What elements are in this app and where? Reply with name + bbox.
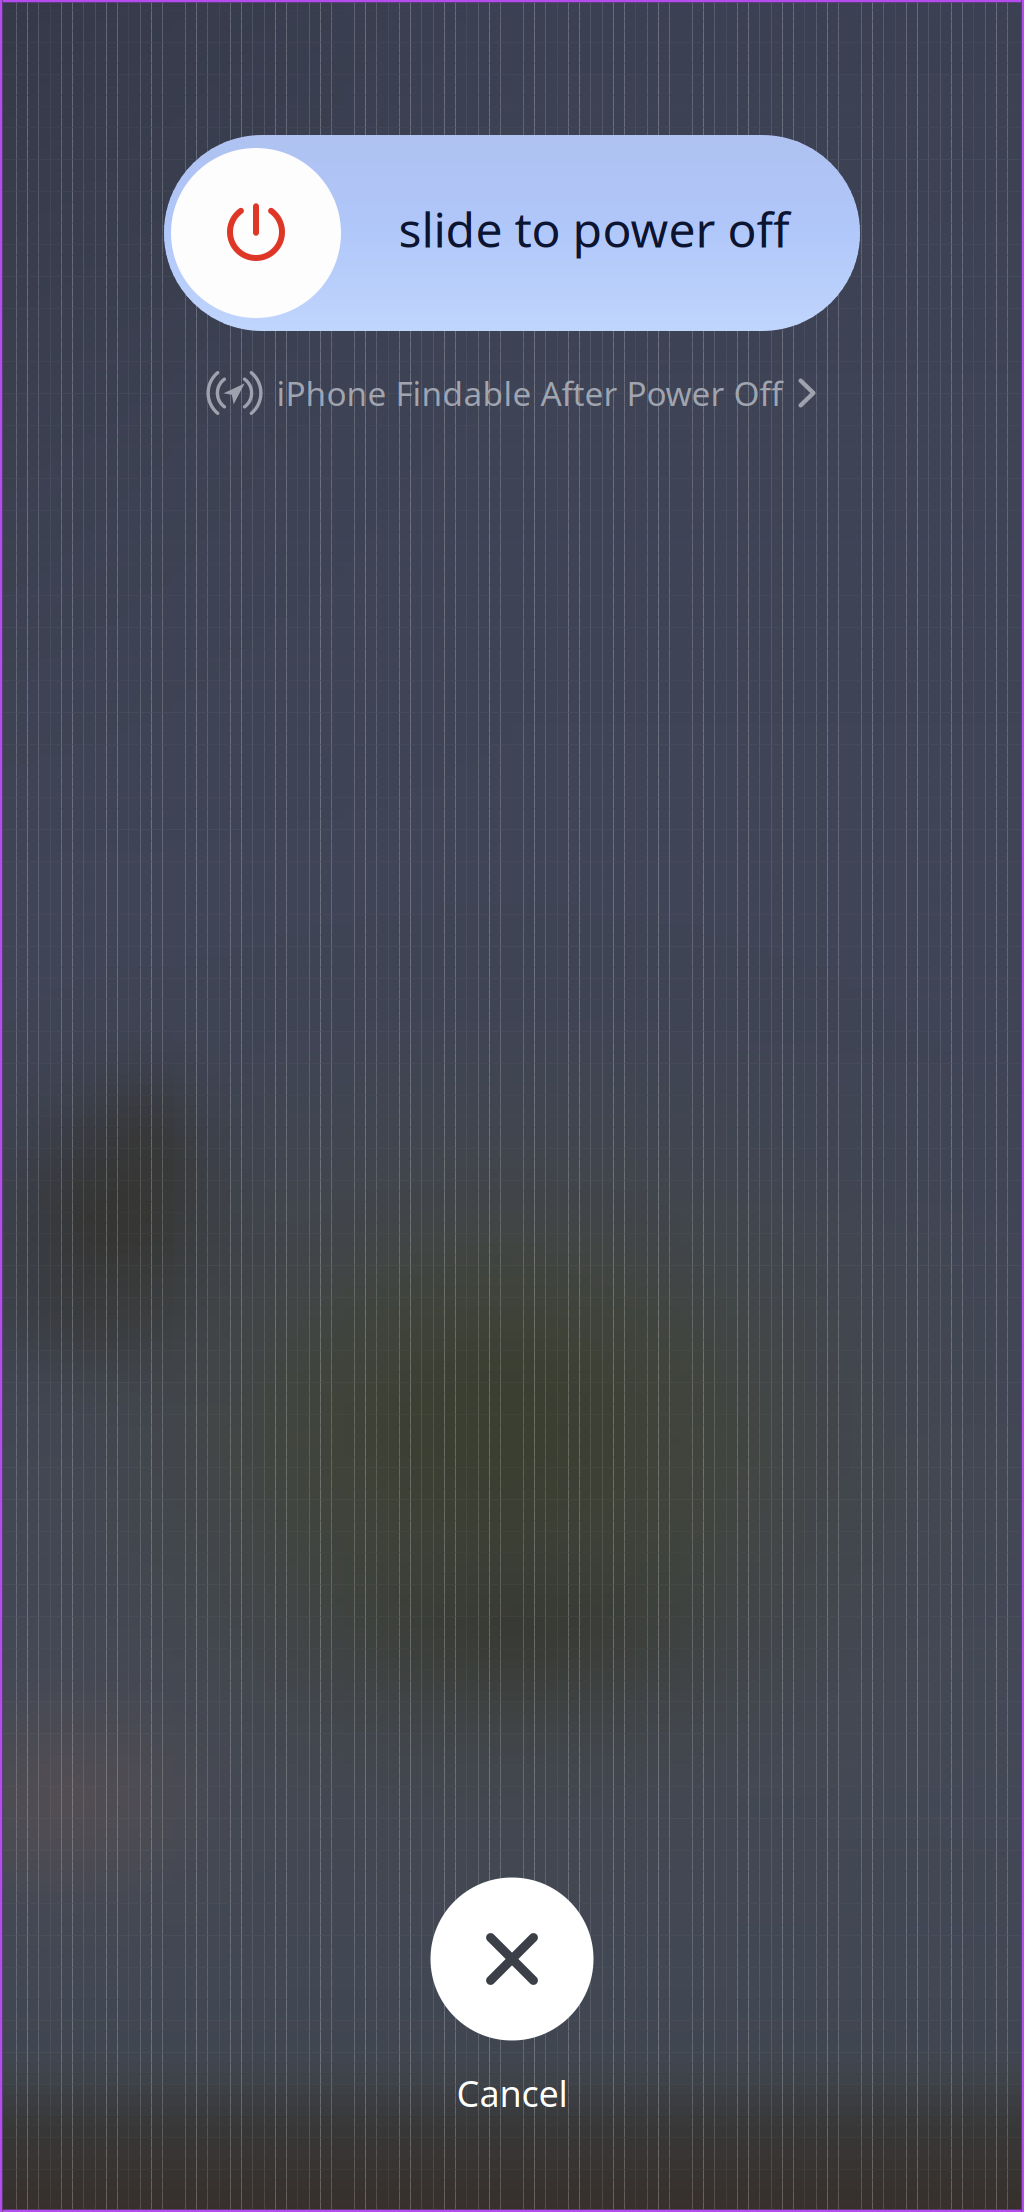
staticText: Cancel: [456, 2069, 567, 2117]
button[interactable]: slide to power off: [164, 135, 860, 331]
button[interactable]: iPhone Findable After Power Off: [204, 362, 815, 424]
staticText: iPhone Findable After Power Off: [276, 371, 782, 415]
button[interactable]: Cancel: [430, 1877, 593, 2040]
button[interactable]: Cancel: [456, 2069, 567, 2117]
staticText: slide to power off: [398, 197, 789, 261]
